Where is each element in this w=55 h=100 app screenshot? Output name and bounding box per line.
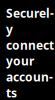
staticText: Securely connect your accounts (6, 5, 54, 100)
